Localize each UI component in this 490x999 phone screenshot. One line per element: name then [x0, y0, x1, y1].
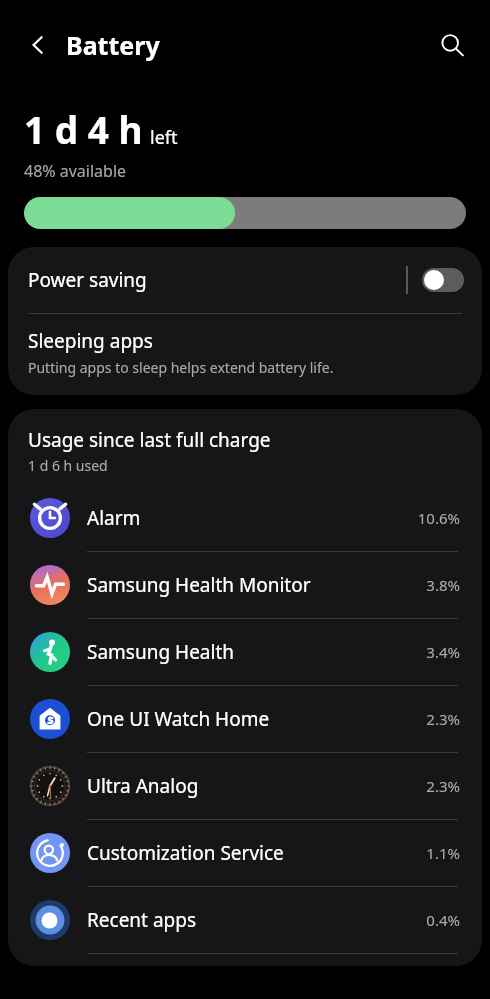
- staticText: 3.8%: [426, 575, 460, 595]
- button[interactable]: Power saving toggle: [422, 268, 464, 292]
- staticText: Sleeping apps: [28, 328, 153, 354]
- button[interactable]: Sleeping apps: [8, 314, 482, 395]
- staticText: 1 d 4 h: [24, 104, 143, 154]
- staticText: Putting apps to sleep helps extend batte…: [28, 358, 334, 377]
- staticText: left: [150, 125, 178, 150]
- staticText: Samsung Health: [87, 639, 426, 665]
- button[interactable]: Search: [428, 21, 476, 69]
- button[interactable]: One UI Watch Home: [8, 686, 482, 752]
- staticText: Ultra Analog: [87, 773, 426, 799]
- button[interactable]: Samsung Health: [8, 619, 482, 685]
- button[interactable]: Back: [14, 21, 62, 69]
- staticText: 2.3%: [426, 776, 460, 796]
- staticText: 48% available: [24, 160, 127, 182]
- button[interactable]: Alarm: [8, 485, 482, 551]
- staticText: Power saving: [28, 267, 406, 293]
- staticText: 0.4%: [426, 910, 460, 930]
- staticText: 10.6%: [417, 508, 460, 528]
- button[interactable]: Customization Service: [8, 820, 482, 886]
- button[interactable]: Power saving: [8, 247, 482, 313]
- button[interactable]: Recent apps: [8, 887, 482, 953]
- staticText: Battery: [66, 28, 160, 62]
- staticText: One UI Watch Home: [87, 706, 426, 732]
- staticText: Usage since last full charge: [28, 427, 271, 453]
- staticText: 2.3%: [426, 709, 460, 729]
- staticText: Customization Service: [87, 840, 426, 866]
- staticText: 1.1%: [426, 843, 460, 863]
- staticText: Alarm: [87, 505, 417, 531]
- staticText: 1 d 6 h used: [28, 456, 108, 475]
- staticText: Samsung Health Monitor: [87, 572, 426, 598]
- staticText: 3.4%: [426, 642, 460, 662]
- button[interactable]: Samsung Health Monitor: [8, 552, 482, 618]
- button[interactable]: Ultra Analog: [8, 753, 482, 819]
- staticText: Recent apps: [87, 907, 426, 933]
